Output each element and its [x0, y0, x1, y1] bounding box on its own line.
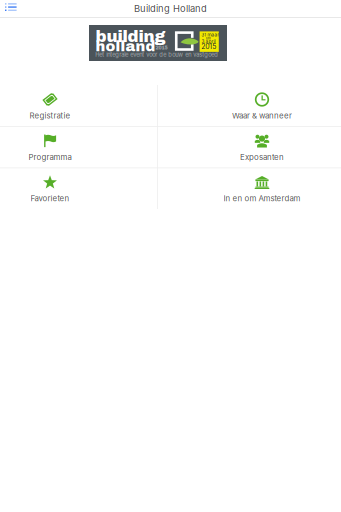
button[interactable]: Exposanten: [156, 126, 341, 168]
staticText: Programma: [28, 152, 71, 162]
staticText: In en om Amsterdam: [223, 194, 300, 203]
staticText: building: [96, 28, 166, 46]
staticText: Exposanten: [240, 152, 284, 162]
staticText: 3 april: [201, 39, 215, 44]
button[interactable]: Programma: [0, 126, 156, 168]
button[interactable]: Menu: [0, 0, 24, 17]
staticText: .2015: [153, 45, 167, 50]
staticText: Registratie: [29, 111, 70, 120]
staticText: Het integrale event voor de bouw en vast…: [95, 51, 218, 58]
staticText: t/m: [206, 36, 211, 40]
button[interactable]: Favorieten: [0, 168, 156, 209]
staticText: 2015: [201, 42, 216, 51]
staticText: holland: [96, 38, 156, 54]
button[interactable]: Registratie: [0, 85, 156, 126]
staticText: Favorieten: [30, 194, 69, 203]
button[interactable]: Waar & wanneer: [156, 85, 341, 126]
button[interactable]: In en om Amsterdam: [156, 168, 341, 209]
staticText: 31 maart: [201, 32, 221, 38]
staticText: Building Holland: [134, 3, 207, 14]
staticText: Waar & wanneer: [232, 111, 292, 120]
